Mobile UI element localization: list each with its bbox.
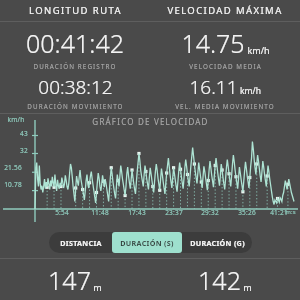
staticText: 35:26 xyxy=(238,208,256,217)
staticText: m:s xyxy=(285,208,296,216)
staticText: VELOCIDAD MÁXIMA xyxy=(167,4,283,17)
button[interactable]: DURACIÓN (S) xyxy=(112,232,182,253)
staticText: DURACIÓN MOVIMIENTO xyxy=(27,102,124,111)
staticText: km/h xyxy=(240,85,261,97)
staticText: 17:43 xyxy=(128,208,146,217)
staticText: km/h xyxy=(7,115,25,124)
staticText: 32 xyxy=(20,146,28,155)
staticText: 11:48 xyxy=(91,208,109,217)
staticText: m xyxy=(93,281,102,293)
staticText: 5:54 xyxy=(55,208,69,217)
staticText: 147 xyxy=(48,263,91,297)
staticText: DURACIÓN (G) xyxy=(190,238,245,248)
staticText: LONGITUD RUTA xyxy=(29,4,122,17)
staticText: 10.78 xyxy=(4,180,22,189)
staticText: 29:32 xyxy=(201,208,219,217)
staticText: GRÁFICO DE VELOCIDAD xyxy=(92,116,209,127)
staticText: m xyxy=(243,281,252,293)
button[interactable]: DISTANCIA xyxy=(49,232,112,253)
staticText: 142 xyxy=(198,263,241,297)
staticText: 00:38:12 xyxy=(38,74,113,100)
staticText: DURACIÓN (S) xyxy=(120,238,174,248)
staticText: 21.56 xyxy=(4,163,22,172)
staticText: DURACIÓN REGISTRO xyxy=(33,62,117,71)
staticText: 14.75 xyxy=(181,26,245,60)
staticText: 43 xyxy=(20,129,28,138)
staticText: km/h xyxy=(247,44,270,56)
staticText: 23:37 xyxy=(165,208,183,217)
staticText: 16.11 xyxy=(189,74,238,100)
staticText: DISTANCIA xyxy=(60,238,102,248)
staticText: 41:21 xyxy=(270,208,288,217)
staticText: VEL. MEDIA MOVIMIENTO xyxy=(175,102,275,111)
button[interactable]: DURACIÓN (G) xyxy=(182,232,252,253)
staticText: VELOCIDAD MEDIA xyxy=(189,62,262,71)
staticText: 00:41:42 xyxy=(26,26,124,60)
